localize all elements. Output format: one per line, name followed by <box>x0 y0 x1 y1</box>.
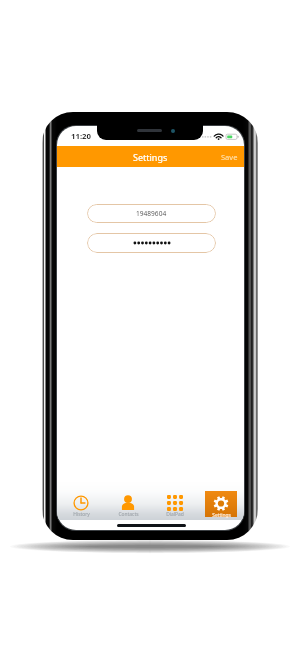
staticText: 11:20 <box>71 131 92 142</box>
staticText: DialPad <box>166 511 184 517</box>
button[interactable]: Settings <box>205 491 237 517</box>
staticText: History <box>73 511 90 517</box>
button[interactable]: 19489604 <box>87 204 216 223</box>
button[interactable]: DialPad <box>162 489 188 516</box>
other: Contacts <box>120 495 136 511</box>
other: History <box>73 495 89 511</box>
button[interactable]: Save <box>215 148 244 166</box>
staticText: Settings <box>212 512 231 519</box>
other: Settings <box>213 496 229 511</box>
button[interactable] <box>87 233 216 253</box>
other: DialPad <box>167 495 183 511</box>
button[interactable]: History <box>68 489 94 516</box>
staticText: Contacts <box>118 511 139 517</box>
staticText: 19489604 <box>136 209 167 218</box>
staticText: Save <box>221 152 238 162</box>
button[interactable]: Contacts <box>115 489 141 516</box>
button[interactable]: Settings <box>133 151 168 163</box>
